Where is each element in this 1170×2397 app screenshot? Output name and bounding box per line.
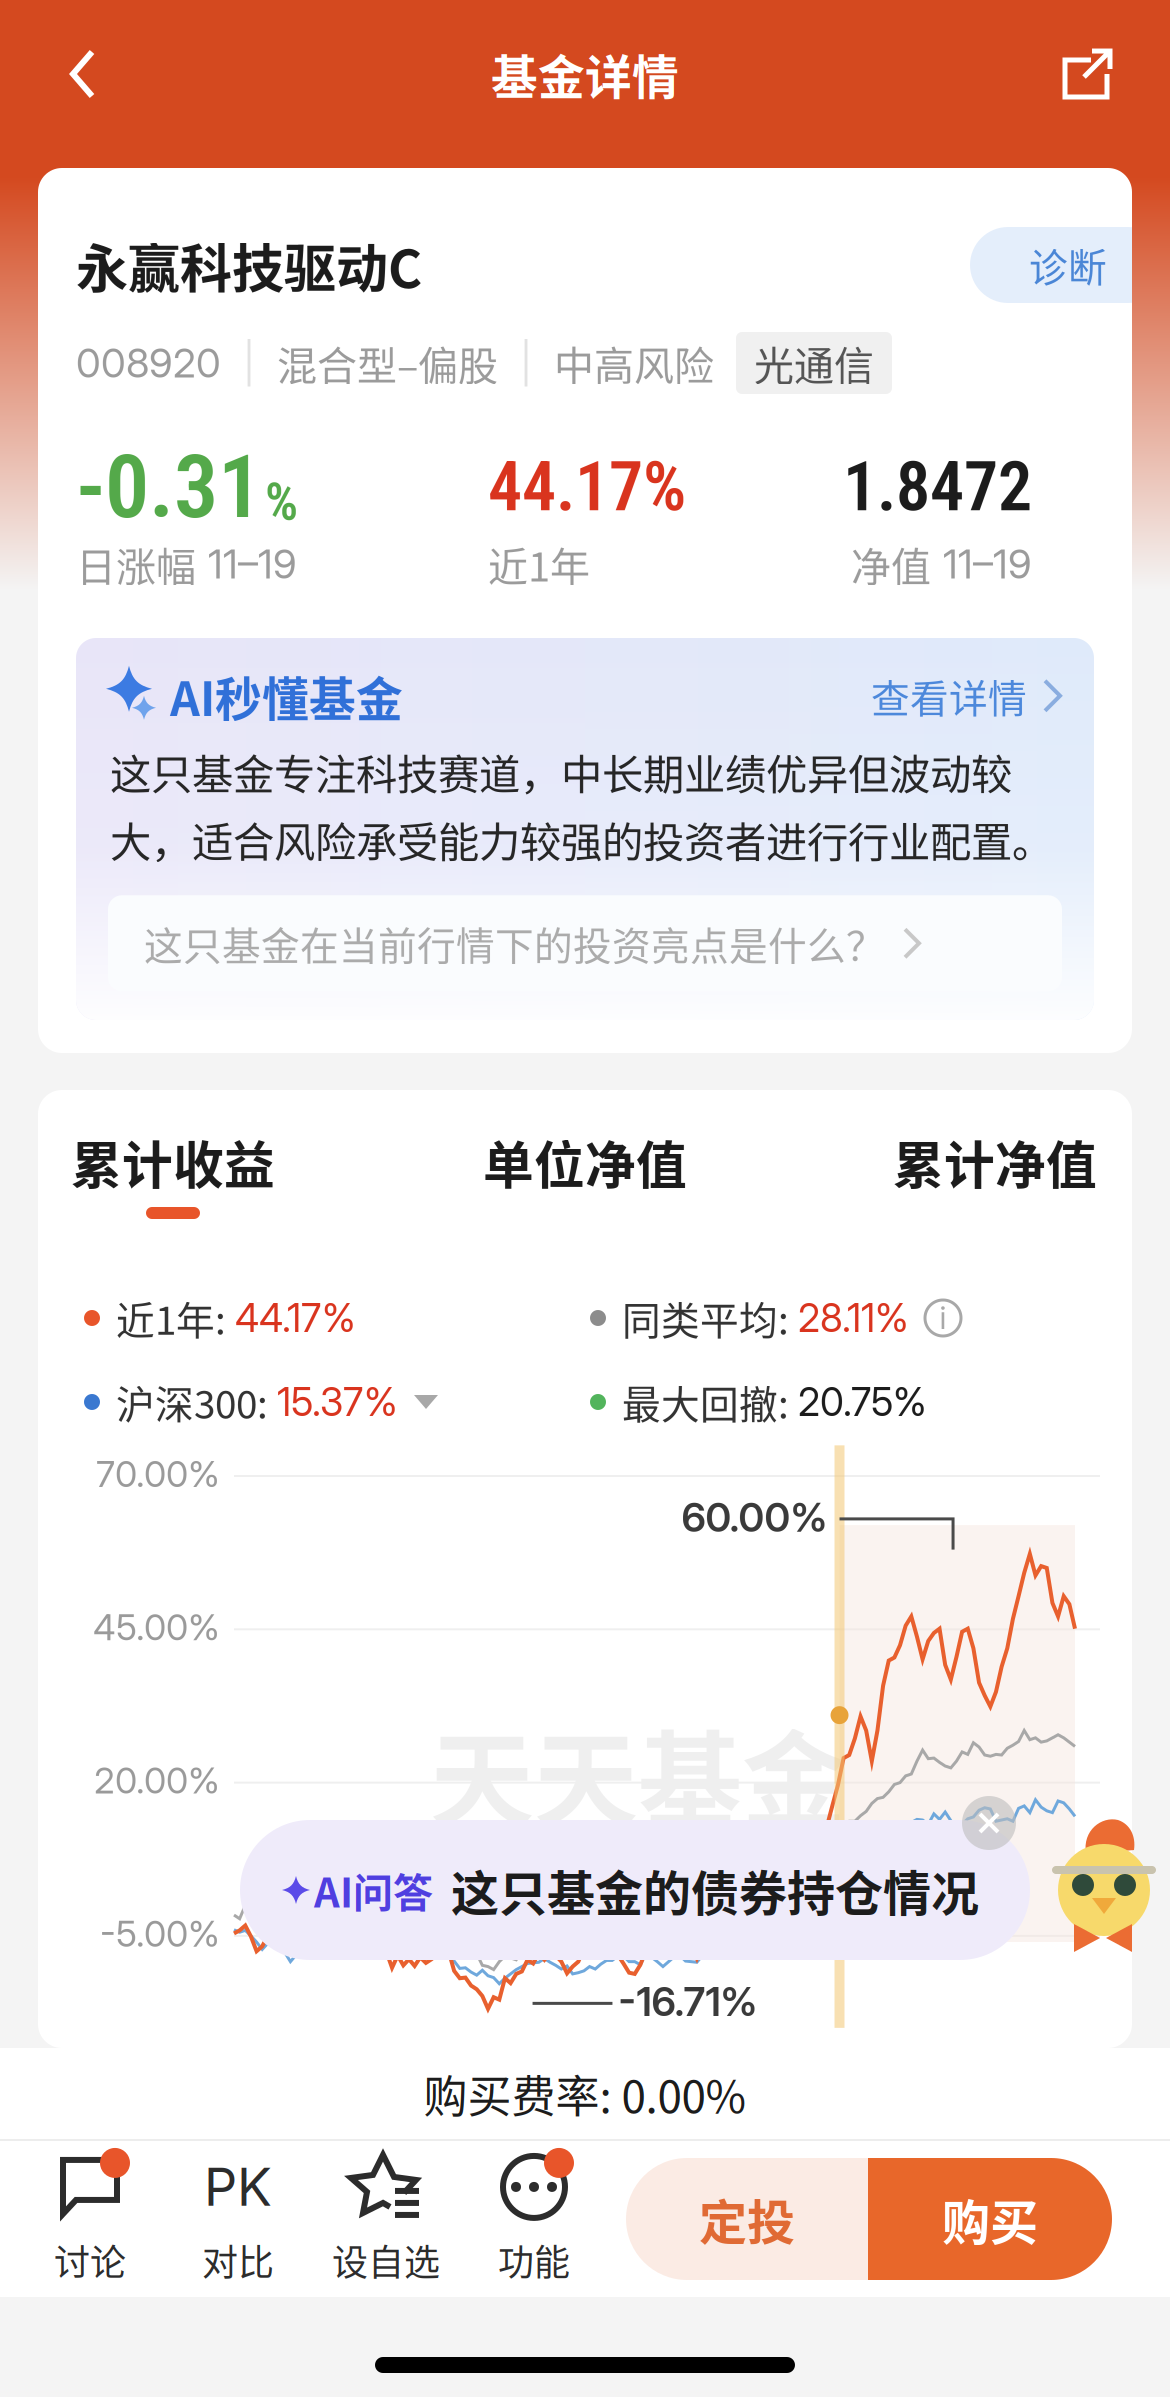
staticText: 45.00% — [93, 1605, 220, 1649]
staticText: 008920 — [76, 339, 221, 387]
staticText: 日涨幅 — [76, 535, 196, 593]
button[interactable]: 设自选 — [312, 2152, 460, 2286]
staticText: 这只基金专注科技赛道，中长期业绩优异但波动较 — [110, 742, 1012, 801]
button[interactable]: 诊断 — [936, 227, 1132, 303]
staticText: i — [939, 1299, 946, 1336]
button[interactable]: 单位净值 — [470, 1130, 700, 1220]
staticText: 近1年 — [488, 535, 590, 593]
staticText: 15.37% — [277, 1379, 398, 1425]
button[interactable]: 分享 — [1032, 0, 1142, 148]
staticText: -0.31 — [76, 435, 262, 538]
button[interactable]: 讨论 — [16, 2152, 164, 2286]
button[interactable]: 定投 — [626, 2158, 868, 2280]
staticText: 设自选 — [332, 2234, 440, 2286]
button[interactable]: 返回 — [28, 0, 138, 148]
staticText: 累计净值 — [893, 1125, 1097, 1199]
staticText: % — [265, 472, 298, 532]
staticText: 44.17% — [235, 1295, 356, 1341]
staticText: | — [520, 339, 532, 387]
staticText: 永赢科技驱动C — [76, 227, 422, 303]
staticText: 沪深300: — [116, 1374, 277, 1430]
staticText: 诊断 — [1029, 237, 1107, 293]
button[interactable]: 这只基金在当前行情下的投资亮点是什么？ — [108, 895, 1062, 991]
staticText: 净值 — [851, 535, 931, 593]
staticText: 单位净值 — [483, 1125, 687, 1199]
staticText: 大，适合风险承受能力较强的投资者进行行业配置。 — [110, 809, 1053, 869]
staticText: 定投 — [699, 2184, 795, 2254]
staticText: 混合型–偏股 — [277, 334, 498, 392]
staticText: 同类平均: — [622, 1290, 798, 1346]
staticText: 讨论 — [54, 2234, 126, 2286]
staticText: 查看详情 — [871, 668, 1027, 724]
staticText: 11–19 — [208, 540, 297, 588]
staticText: 20.00% — [94, 1759, 220, 1802]
staticText: 功能 — [498, 2234, 570, 2286]
staticText: 累计收益 — [71, 1125, 275, 1199]
button[interactable]: 累计收益 — [58, 1130, 288, 1220]
button[interactable]: 购买 — [868, 2158, 1112, 2280]
button[interactable]: 功能 — [460, 2152, 608, 2286]
staticText: 这只基金的债券持仓情况 — [451, 1855, 979, 1925]
staticText: 购买 — [942, 2184, 1038, 2254]
staticText: 光通信 — [754, 334, 874, 392]
staticText: -16.71% — [618, 1977, 757, 2026]
staticText: | — [243, 339, 255, 387]
staticText: AI秒懂基金 — [170, 662, 403, 730]
staticText: 11–19 — [943, 540, 1032, 588]
staticText: 最大回撤: — [622, 1374, 798, 1430]
staticText: 1.8472 — [843, 447, 1032, 527]
staticText: -5.00% — [100, 1912, 220, 1955]
staticText: 购买费率: 0.00% — [423, 2062, 746, 2125]
button[interactable]: PK — [164, 2152, 312, 2286]
staticText: 中高风险 — [554, 334, 714, 392]
staticText: 天天基金 — [430, 1698, 846, 1849]
staticText: 20.75% — [798, 1379, 927, 1425]
button[interactable]: 查看详情 — [871, 668, 1062, 724]
staticText: 44.17% — [488, 447, 686, 527]
button[interactable]: 累计净值 — [880, 1130, 1110, 1220]
staticText: AI问答 — [314, 1861, 433, 1919]
staticText: 60.00% — [681, 1493, 827, 1541]
staticText: 这只基金在当前行情下的投资亮点是什么？ — [144, 915, 885, 971]
staticText: 基金详情 — [491, 40, 679, 108]
staticText: 70.00% — [96, 1452, 220, 1496]
staticText: 对比 — [202, 2234, 274, 2286]
staticText: 近1年: — [116, 1290, 235, 1346]
staticText: 28.11% — [798, 1295, 909, 1341]
staticText: PK — [204, 2155, 272, 2218]
